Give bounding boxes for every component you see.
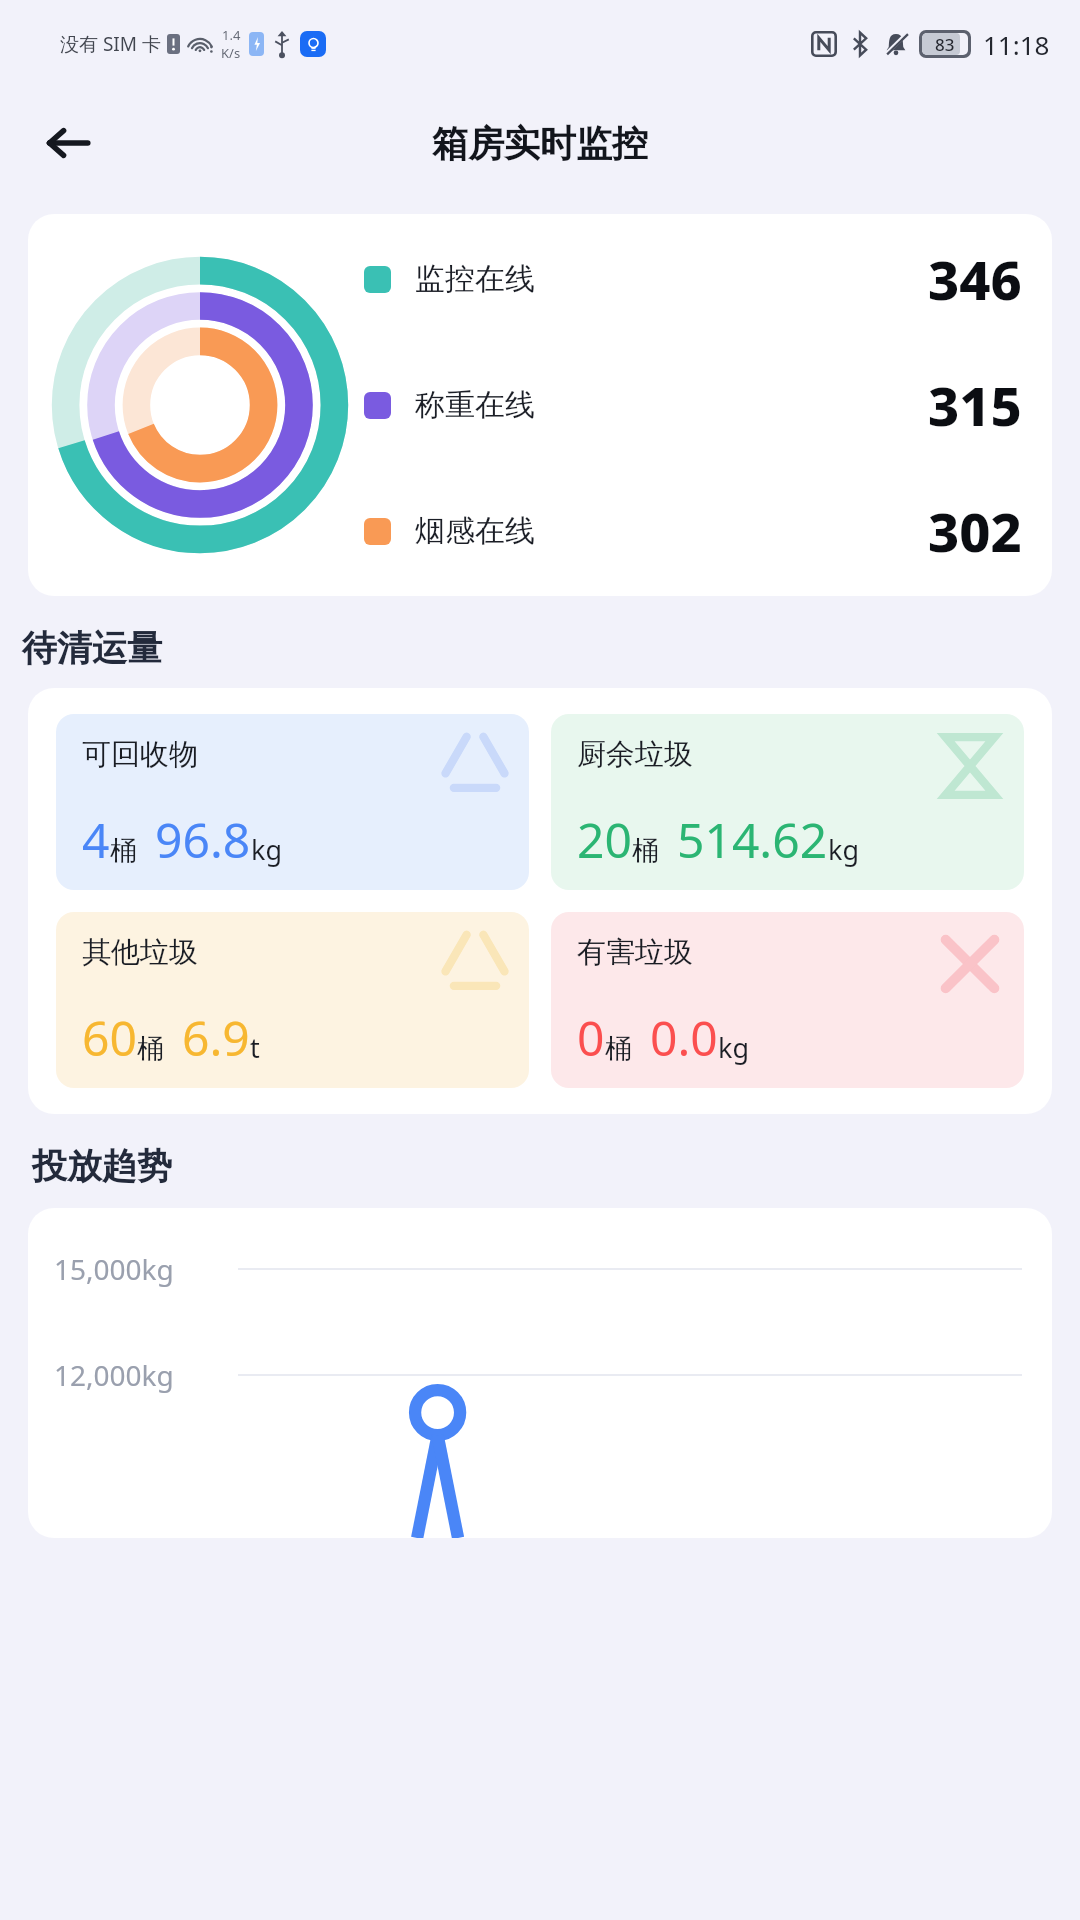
button[interactable]: 15,000kg [28,1208,1052,1538]
button[interactable]: Back [30,105,106,181]
staticText: 83 [935,33,955,55]
staticText: 514.62 [677,807,828,872]
button[interactable]: 有害垃圾 [551,912,1024,1088]
staticText: 箱房实时监控 [432,121,648,166]
staticText: 60 [82,1005,137,1070]
staticText: 其他垃圾 [82,934,198,971]
staticText: 监控在线 [415,260,535,298]
staticText: kg [718,1029,750,1066]
staticText: 1.4 [222,26,241,44]
staticText: 12,000kg [54,1356,174,1394]
button[interactable]: 可回收物 [56,714,529,890]
button[interactable]: 厨余垃圾 [551,714,1024,890]
staticText: 302 [928,494,1022,568]
staticText: 4 [82,807,110,872]
staticText: 11:18 [983,27,1050,62]
staticText: 96.8 [155,807,251,872]
staticText: 桶 [605,1032,632,1066]
button[interactable]: 监控在线 [28,214,1052,596]
staticText: 桶 [632,834,659,868]
staticText: 可回收物 [82,736,198,773]
staticText: kg [828,831,860,868]
staticText: kg [251,831,283,868]
staticText: 6.9 [182,1005,250,1070]
staticText: K/s [221,44,241,62]
staticText: 315 [928,368,1022,442]
staticText: 厨余垃圾 [577,736,693,773]
button[interactable]: 其他垃圾 [56,912,529,1088]
staticText: 桶 [137,1032,164,1066]
staticText: 15,000kg [54,1250,174,1288]
staticText: 没有 SIM 卡 [60,31,161,57]
staticText: 0.0 [650,1005,718,1070]
staticText: 0 [577,1005,605,1070]
staticText: 投放趋势 [32,1144,172,1188]
staticText: 有害垃圾 [577,934,693,971]
staticText: 346 [928,242,1022,316]
staticText: 桶 [110,834,137,868]
staticText: 烟感在线 [415,512,535,550]
staticText: 称重在线 [415,386,535,424]
staticText: t [250,1029,260,1066]
staticText: 20 [577,807,632,872]
staticText: 待清运量 [22,626,162,670]
